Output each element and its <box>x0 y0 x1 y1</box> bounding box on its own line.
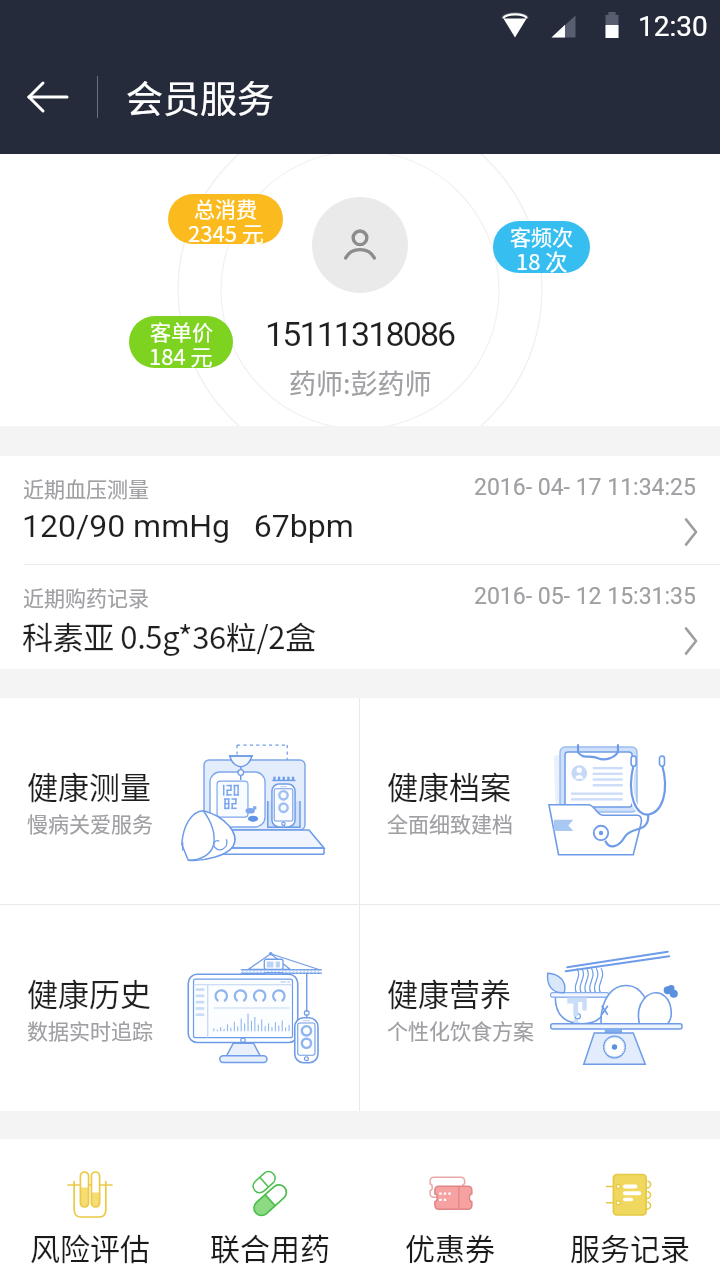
staticText: 客频次 <box>510 221 573 251</box>
other: Open <box>684 627 698 655</box>
staticText: 服务记录 <box>570 1225 690 1268</box>
staticText: 12:30 <box>638 10 708 43</box>
staticText: 120/90 mmHg 67bpm <box>22 507 354 545</box>
staticText: 慢病关爱服务 <box>27 808 153 838</box>
button[interactable]: 近期购药记录 <box>0 565 720 669</box>
button[interactable]: 联合用药 <box>180 1139 360 1280</box>
button[interactable]: 健康测量 <box>0 698 359 904</box>
staticText: 数据实时追踪 <box>27 1015 153 1045</box>
staticText: 健康营养 <box>387 970 511 1015</box>
staticText: 客单价 <box>150 316 213 346</box>
staticText: 近期购药记录 <box>23 582 149 612</box>
staticText: 18 次 <box>516 244 568 273</box>
staticText: 会员服务 <box>126 70 274 124</box>
staticText: 健康历史 <box>27 970 151 1015</box>
other: Signal strength <box>551 15 576 38</box>
staticText: 近期血压测量 <box>23 473 149 503</box>
staticText: 184 元 <box>149 339 213 368</box>
button[interactable]: 服务记录 <box>540 1139 720 1280</box>
button[interactable]: 健康档案 <box>360 698 720 904</box>
button[interactable]: 近期血压测量 <box>0 456 720 565</box>
staticText: 健康测量 <box>27 763 151 808</box>
staticText: 风险评估 <box>30 1225 150 1268</box>
button[interactable]: Member avatar <box>312 197 408 293</box>
staticText: 总消费 <box>194 194 257 223</box>
button[interactable]: 客单价 <box>129 316 233 368</box>
button[interactable]: 风险评估 <box>0 1139 180 1280</box>
button[interactable]: 优惠券 <box>360 1139 540 1280</box>
staticText: 联合用药 <box>210 1225 330 1268</box>
staticText: 2016- 05- 12 15:31:35 <box>474 583 696 610</box>
button[interactable]: 客频次 <box>493 221 590 273</box>
staticText: 个性化饮食方案 <box>387 1015 534 1045</box>
staticText: 药师:彭药师 <box>289 363 432 402</box>
staticText: 全面细致建档 <box>387 808 513 838</box>
button[interactable]: 总消费 <box>168 194 283 244</box>
other: Battery <box>603 12 621 38</box>
button[interactable]: Back <box>8 57 88 137</box>
staticText: 2345 元 <box>188 216 264 244</box>
staticText: 15111318086 <box>265 314 455 354</box>
other: Open <box>684 518 698 546</box>
staticText: 健康档案 <box>387 763 511 808</box>
other: Wi-Fi <box>502 13 528 38</box>
button[interactable]: 健康历史 <box>0 905 359 1111</box>
staticText: 科素亚 0.5g*36粒/2盒 <box>22 613 316 658</box>
staticText: 2016- 04- 17 11:34:25 <box>474 474 696 501</box>
button[interactable]: 健康营养 <box>360 905 720 1111</box>
staticText: 优惠券 <box>405 1225 495 1268</box>
